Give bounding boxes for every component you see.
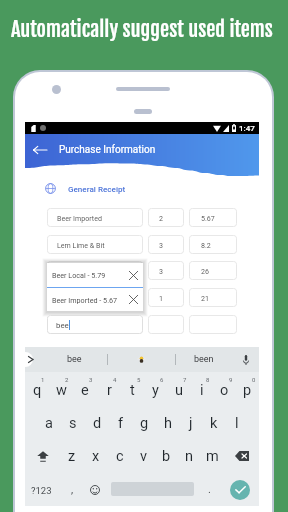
button[interactable]: n <box>178 439 201 473</box>
button[interactable]: i <box>190 372 213 406</box>
staticText: Beer Imported <box>57 214 102 222</box>
button[interactable]: Back <box>30 140 50 160</box>
staticText: w <box>56 382 67 399</box>
staticText: 1:47 <box>239 124 255 133</box>
staticText: d <box>93 415 102 432</box>
button[interactable]: b <box>155 439 178 473</box>
button[interactable]: s <box>61 406 85 440</box>
staticText: 3 <box>159 241 163 249</box>
staticText: s <box>69 415 77 432</box>
staticText: 4 <box>113 376 117 383</box>
staticText: 8.2 <box>201 241 211 249</box>
button[interactable]: h <box>156 406 179 440</box>
button[interactable]: t <box>121 372 144 406</box>
button[interactable]: u <box>167 372 190 406</box>
button[interactable]: r <box>97 372 121 406</box>
staticText: Lem Lime & Bit <box>57 241 105 249</box>
button[interactable] <box>47 315 143 334</box>
staticText: bee <box>56 321 69 330</box>
staticText: f <box>118 415 124 432</box>
button[interactable]: Done <box>230 480 250 500</box>
staticText: i <box>200 382 204 399</box>
button[interactable]: m <box>201 439 224 473</box>
staticText: . <box>208 483 211 496</box>
staticText: h <box>164 415 172 432</box>
button[interactable]: e <box>73 372 97 406</box>
button[interactable]: Beer Imported <box>47 208 143 227</box>
button[interactable]: bee <box>47 315 143 334</box>
button[interactable]: l <box>225 406 248 440</box>
button[interactable]: 3 <box>148 261 184 280</box>
staticText: 9 <box>229 376 233 383</box>
button[interactable]: g <box>133 406 156 440</box>
button[interactable]: q <box>25 372 49 406</box>
button[interactable]: 3 <box>148 235 184 254</box>
button[interactable]: 2 <box>148 208 184 227</box>
staticText: 7 <box>183 376 187 383</box>
button[interactable]: ?123 <box>25 473 58 507</box>
staticText: 26 <box>201 267 209 275</box>
button[interactable]: Emoji suggestion <box>108 347 175 372</box>
staticText: y <box>152 382 159 399</box>
button[interactable]: bee <box>41 347 107 372</box>
button[interactable] <box>148 315 184 334</box>
button[interactable]: Backspace <box>224 439 259 473</box>
staticText: 1 <box>159 294 163 302</box>
button[interactable]: y <box>144 372 167 406</box>
button[interactable]: Emoji <box>84 473 106 507</box>
button[interactable]: w <box>49 372 73 406</box>
staticText: m <box>206 448 219 465</box>
staticText: l <box>235 415 239 432</box>
staticText: o <box>220 382 229 399</box>
staticText: p <box>243 382 252 399</box>
button[interactable]: , <box>61 473 83 507</box>
button[interactable]: Shift <box>25 439 60 473</box>
staticText: z <box>68 448 76 465</box>
staticText: x <box>92 448 100 465</box>
button[interactable]: Beer Local - 5.79 <box>47 263 143 287</box>
button[interactable]: Voice input <box>232 347 259 372</box>
other: More suggestions <box>28 356 33 363</box>
staticText: Automatically suggest used items <box>11 17 273 43</box>
staticText: n <box>185 448 194 465</box>
staticText: ?123 <box>31 485 52 496</box>
button[interactable]: d <box>85 406 109 440</box>
button[interactable] <box>18 352 33 367</box>
button[interactable]: v <box>132 439 155 473</box>
staticText: been <box>194 354 214 365</box>
staticText: t <box>130 382 135 399</box>
button[interactable]: c <box>108 439 132 473</box>
staticText: , <box>71 483 74 496</box>
staticText: 1 <box>41 376 45 383</box>
button[interactable]: x <box>84 439 108 473</box>
button[interactable]: a <box>37 406 61 440</box>
staticText: 3 <box>89 376 93 383</box>
staticText: 5 <box>137 376 141 383</box>
staticText: 2 <box>65 376 69 383</box>
staticText: bee <box>67 354 82 365</box>
staticText: 5.67 <box>201 214 215 222</box>
staticText: r <box>107 382 112 399</box>
button[interactable] <box>47 288 143 307</box>
button[interactable]: 26 <box>189 261 237 280</box>
button[interactable]: been <box>176 347 232 372</box>
button[interactable]: Lem Lime & Bit <box>47 235 143 254</box>
button[interactable]: k <box>202 406 225 440</box>
button[interactable]: . <box>199 473 219 507</box>
button[interactable]: p <box>236 372 259 406</box>
button[interactable] <box>47 261 143 280</box>
button[interactable] <box>189 315 237 334</box>
button[interactable]: f <box>109 406 133 440</box>
button[interactable]: General Receipt <box>45 183 126 194</box>
button[interactable]: 21 <box>189 288 237 307</box>
button[interactable]: j <box>179 406 202 440</box>
staticText: 21 <box>201 294 209 302</box>
button[interactable]: 8.2 <box>189 235 237 254</box>
button[interactable]: o <box>213 372 236 406</box>
button[interactable]: 5.67 <box>189 208 237 227</box>
button[interactable]: z <box>60 439 84 473</box>
button[interactable]: Beer Imported - 5.67 <box>47 288 143 311</box>
button[interactable]: 1 <box>148 288 184 307</box>
staticText: v <box>140 448 148 465</box>
